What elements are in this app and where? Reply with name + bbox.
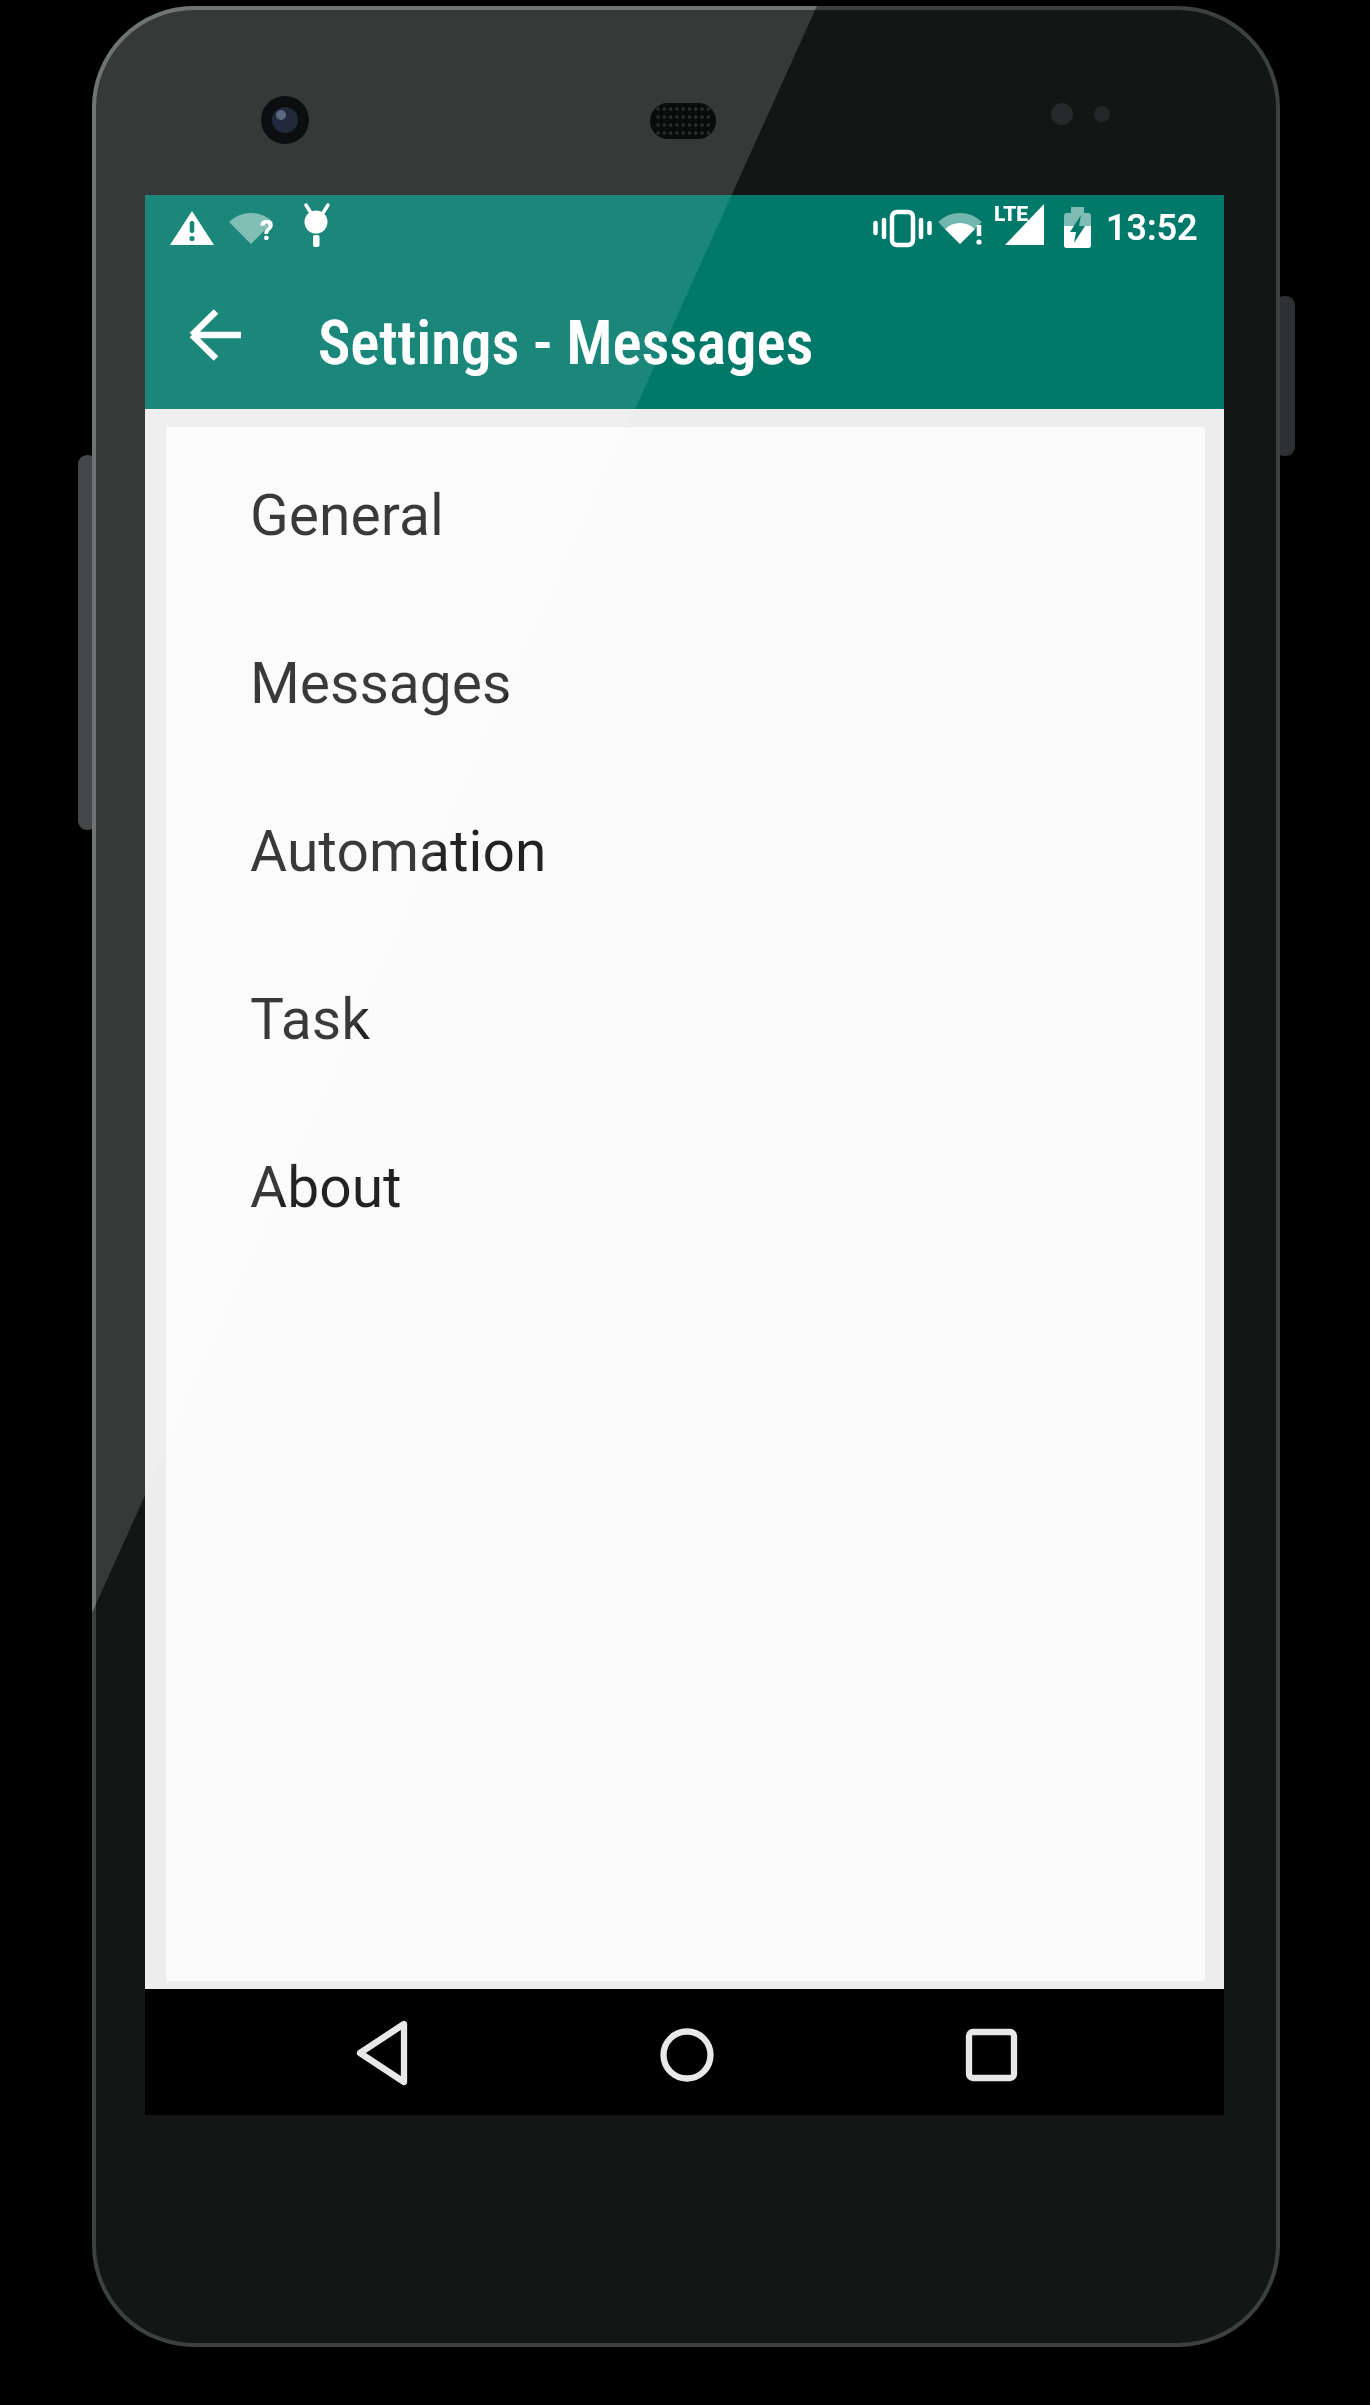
button[interactable]: Messages xyxy=(166,599,1205,767)
staticText: Task xyxy=(250,986,371,1053)
button[interactable] xyxy=(911,1992,1071,2112)
staticText: Messages xyxy=(250,650,512,717)
button[interactable] xyxy=(607,1992,767,2112)
button[interactable]: General xyxy=(166,431,1205,599)
staticText: About xyxy=(250,1154,402,1221)
button[interactable]: About xyxy=(166,1103,1205,1271)
button[interactable]: Task xyxy=(166,935,1205,1103)
button[interactable]: Automation xyxy=(166,767,1205,935)
staticText: Settings - Messages xyxy=(318,307,814,378)
staticText: LTE xyxy=(994,202,1029,227)
staticText: Automation xyxy=(250,818,547,885)
button[interactable] xyxy=(156,271,276,399)
staticText: 13:52 xyxy=(1106,207,1198,249)
staticText: ? xyxy=(260,215,274,247)
button[interactable] xyxy=(300,1992,460,2112)
staticText: General xyxy=(250,482,444,549)
